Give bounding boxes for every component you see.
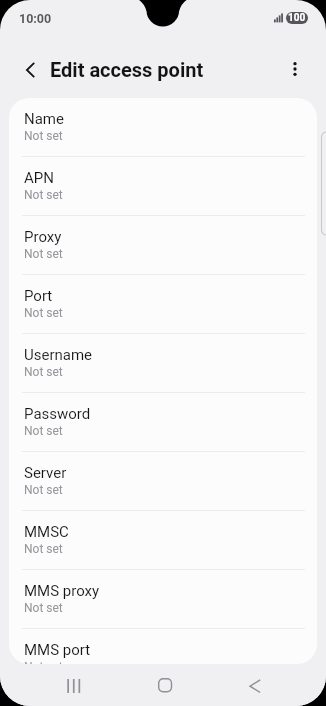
staticText: Not set	[24, 601, 63, 615]
button[interactable]: APN	[9, 157, 317, 215]
staticText: Not set	[24, 660, 63, 664]
button[interactable]: Home	[142, 664, 188, 706]
staticText: Not set	[24, 247, 63, 261]
button[interactable]: MMS proxy	[9, 570, 317, 628]
button[interactable]: Port	[9, 275, 317, 333]
button[interactable]: Navigate up	[12, 51, 48, 87]
staticText: Username	[24, 346, 93, 364]
staticText: Not set	[24, 306, 63, 320]
button[interactable]: Recent apps	[51, 664, 97, 706]
staticText: 100	[288, 12, 306, 24]
button[interactable]: Password	[9, 393, 317, 451]
staticText: Not set	[24, 188, 63, 202]
staticText: APN	[24, 169, 54, 187]
button[interactable]: More options	[277, 51, 313, 87]
staticText: 10:00	[19, 11, 52, 26]
button[interactable]: MMS port	[9, 629, 317, 664]
staticText: Name	[24, 110, 64, 128]
button[interactable]: Username	[9, 334, 317, 392]
staticText: Proxy	[24, 228, 62, 246]
staticText: Password	[24, 405, 91, 423]
staticText: MMS port	[24, 641, 91, 659]
staticText: Not set	[24, 129, 63, 143]
staticText: Not set	[24, 542, 63, 556]
staticText: Edit access point	[50, 58, 204, 81]
button[interactable]: Server	[9, 452, 317, 510]
button[interactable]: Name	[9, 98, 317, 156]
staticText: MMSC	[24, 523, 69, 541]
button[interactable]: Proxy	[9, 216, 317, 274]
button[interactable]: MMSC	[9, 511, 317, 569]
staticText: Port	[24, 287, 53, 305]
staticText: Not set	[24, 365, 63, 379]
staticText: Not set	[24, 483, 63, 497]
staticText: Server	[24, 464, 67, 482]
staticText: Not set	[24, 424, 63, 438]
staticText: MMS proxy	[24, 582, 100, 600]
button[interactable]: Back	[232, 664, 278, 706]
